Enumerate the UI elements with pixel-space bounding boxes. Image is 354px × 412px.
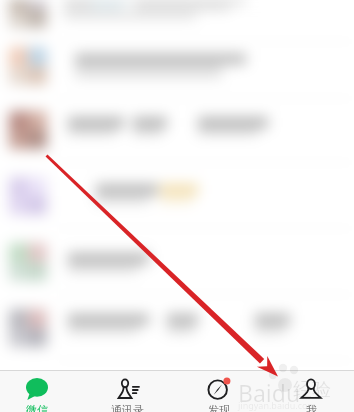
staticText: 发现 (208, 403, 230, 412)
staticText: 通讯录 (111, 403, 144, 412)
button[interactable] (0, 33, 354, 99)
button[interactable] (0, 295, 354, 361)
button[interactable] (0, 163, 354, 229)
button[interactable] (0, 0, 354, 42)
staticText: jingyan.baidu.com (238, 399, 316, 411)
staticText: Baidu (238, 377, 301, 408)
staticText: 经验 (293, 378, 331, 402)
button[interactable]: 微信 (0, 371, 82, 412)
button[interactable]: 我 (265, 371, 354, 412)
staticText: 我 (306, 403, 317, 412)
button[interactable] (0, 229, 354, 295)
button[interactable]: 通讯录 (82, 371, 173, 412)
button[interactable] (0, 97, 354, 163)
staticText: 微信 (26, 403, 48, 412)
button[interactable]: 发现 (173, 371, 265, 412)
